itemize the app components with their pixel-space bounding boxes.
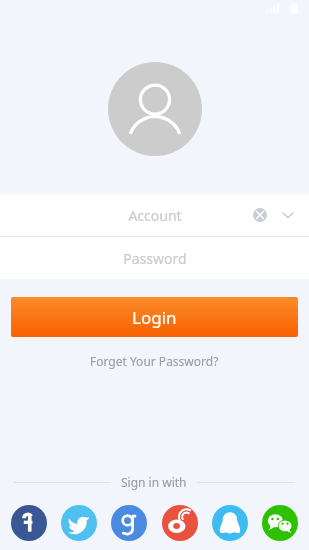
button[interactable]: Google (110, 504, 148, 542)
button[interactable]: WeChat (261, 504, 299, 542)
button[interactable]: QQ (211, 504, 249, 542)
button[interactable]: Password (0, 237, 309, 279)
button[interactable]: Forget Your Password? (80, 349, 229, 373)
button[interactable]: Show saved accounts (277, 204, 299, 226)
button[interactable]: Profile photo (108, 62, 202, 156)
staticText: Forget Your Password? (90, 353, 219, 369)
button[interactable]: Weibo (161, 504, 199, 542)
button[interactable]: Clear account (249, 204, 271, 226)
staticText: Sign in with (121, 474, 187, 490)
staticText: Account (128, 206, 182, 225)
button[interactable]: Account (0, 194, 309, 236)
button[interactable]: Login (11, 297, 298, 337)
button[interactable]: Facebook (10, 504, 48, 542)
staticText: Login (132, 306, 177, 329)
staticText: Password (123, 249, 187, 268)
button[interactable]: Twitter (60, 504, 98, 542)
